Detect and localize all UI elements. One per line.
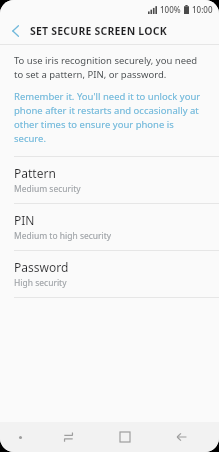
staticText: High security bbox=[14, 277, 67, 289]
button[interactable]: PIN bbox=[0, 204, 219, 250]
staticText: PIN bbox=[14, 212, 35, 228]
staticText: 100% bbox=[160, 4, 181, 15]
button[interactable]: Home bbox=[97, 422, 153, 452]
button[interactable]: Pattern bbox=[0, 157, 219, 203]
staticText: Remember it. You'll need it to unlock yo… bbox=[14, 90, 206, 145]
staticText: SET SECURE SCREEN LOCK bbox=[30, 24, 167, 38]
button[interactable]: Hide keyboard indicator bbox=[0, 422, 40, 452]
button[interactable]: Back bbox=[153, 422, 209, 452]
staticText: 10:00 bbox=[192, 4, 213, 15]
staticText: Medium to high security bbox=[14, 230, 112, 242]
staticText: Medium security bbox=[14, 183, 81, 195]
staticText: Pattern bbox=[14, 165, 56, 181]
button[interactable]: Back bbox=[0, 18, 30, 44]
staticText: Password bbox=[14, 259, 69, 275]
button[interactable]: Password bbox=[0, 251, 219, 297]
button[interactable]: Recent apps bbox=[40, 422, 97, 452]
staticText: To use iris recognition securely, you ne… bbox=[14, 54, 203, 81]
